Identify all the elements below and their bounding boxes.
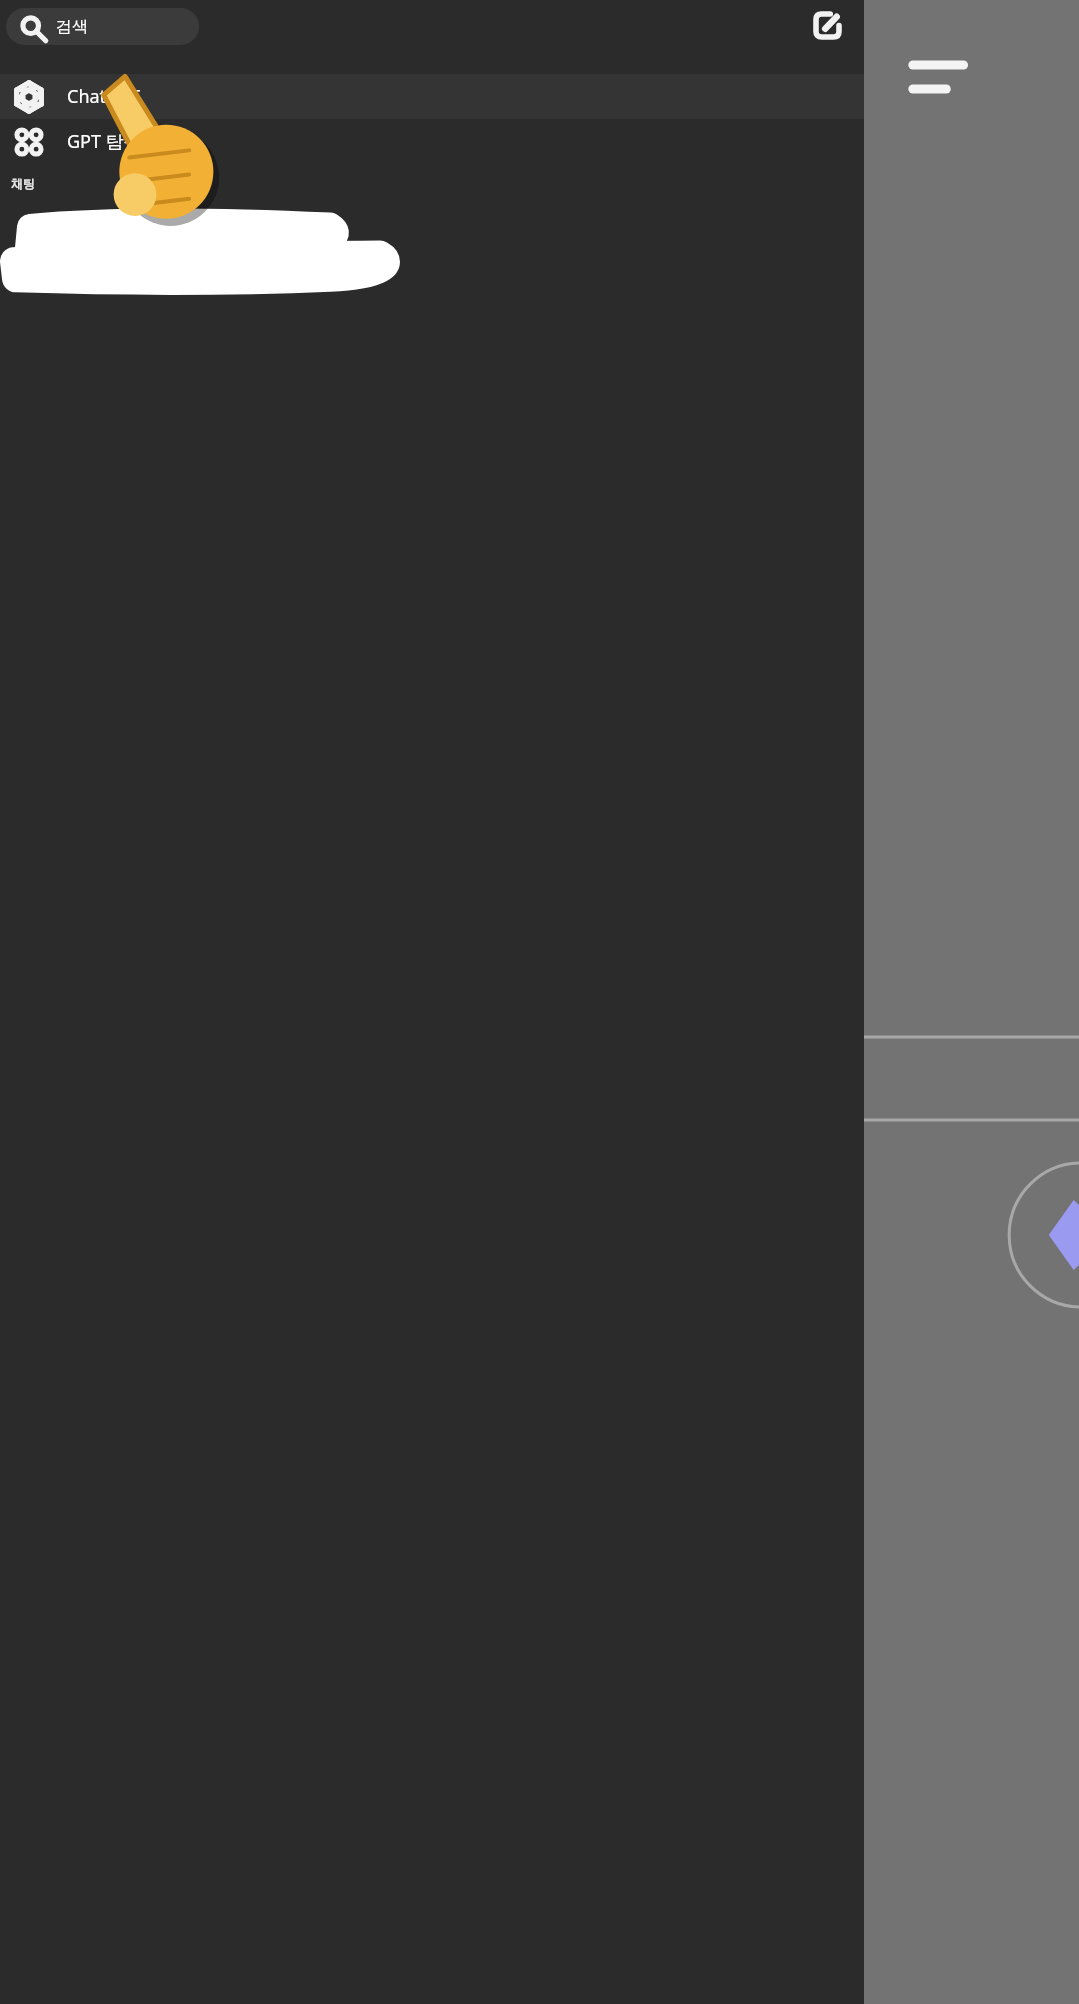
staticText: 검색 [56,17,88,37]
staticText: GPT 탐색하기 [67,129,178,154]
button[interactable]: 검색 [6,8,199,45]
button[interactable]: GPT 탐색하기 [0,119,864,164]
button[interactable]: ChatGPT [0,74,864,119]
button[interactable]: New chat [806,4,850,48]
staticText: 채팅 [11,176,35,191]
staticText: ChatGPT [67,84,141,109]
